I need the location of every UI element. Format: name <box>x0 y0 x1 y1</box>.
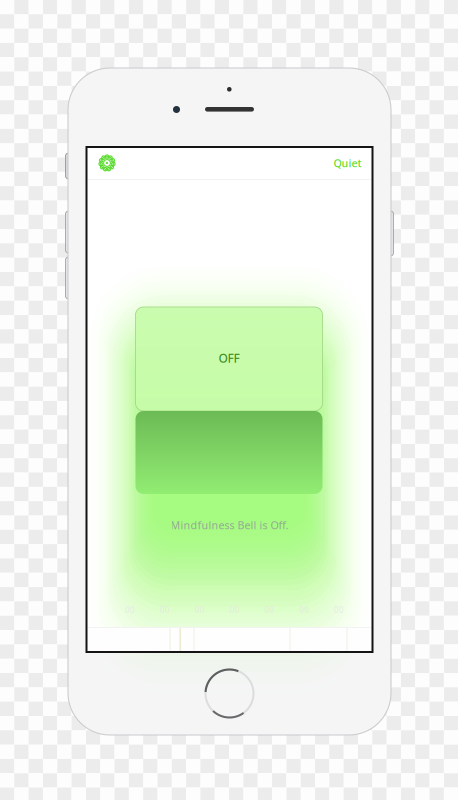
staticText: 00 <box>195 605 205 615</box>
staticText: OFF <box>218 350 239 366</box>
staticText: 00 <box>125 605 135 615</box>
button[interactable]: Toggle Mindfulness Bell <box>135 411 322 494</box>
button[interactable]: Quiet <box>309 147 372 179</box>
staticText: 00 <box>229 605 239 615</box>
staticText: 00 <box>299 605 309 615</box>
staticText: 00 <box>160 605 170 615</box>
button[interactable]: Settings <box>86 147 127 179</box>
staticText: Quiet <box>333 156 361 170</box>
staticText: 00 <box>264 605 274 615</box>
staticText: Mindfulness Bell is Off. <box>170 518 288 532</box>
staticText: 00 <box>334 605 344 615</box>
button[interactable]: OFF <box>135 307 322 411</box>
